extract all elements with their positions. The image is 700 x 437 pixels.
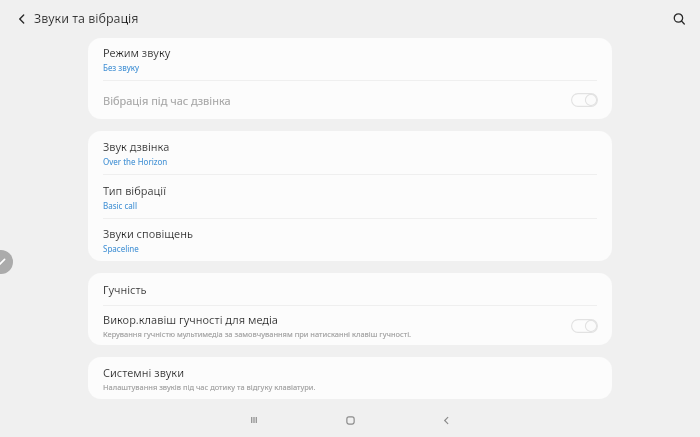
staticText: Over the Horizon xyxy=(103,156,168,167)
button[interactable]: Системні звуки xyxy=(88,357,612,399)
staticText: Налаштування звуків під час дотику та ві… xyxy=(103,382,316,392)
button[interactable]: Toggle xyxy=(571,319,598,333)
button[interactable]: Тип вібрації xyxy=(88,175,612,218)
button[interactable]: Режим звуку xyxy=(88,38,612,80)
staticText: Звук дзвінка xyxy=(103,139,170,154)
button[interactable]: Викор.клавіш гучності для медіа xyxy=(88,306,612,345)
button[interactable]: Back xyxy=(428,403,464,437)
staticText: Режим звуку xyxy=(103,45,171,60)
button[interactable]: Вібрація під час дзвінка xyxy=(88,81,612,119)
button[interactable]: Recent apps xyxy=(236,403,272,437)
button[interactable]: Back xyxy=(7,4,37,34)
button[interactable]: Гучність xyxy=(88,273,612,305)
button[interactable]: Звук дзвінка xyxy=(88,131,612,174)
button[interactable]: Звуки сповіщень xyxy=(88,219,612,261)
staticText: Викор.клавіш гучності для медіа xyxy=(103,312,278,327)
staticText: Без звуку xyxy=(103,62,140,73)
staticText: Звуки та вібрація xyxy=(34,10,139,27)
staticText: Spaceline xyxy=(103,243,139,254)
button[interactable]: Search xyxy=(664,4,694,34)
button[interactable]: Toggle xyxy=(571,93,598,107)
staticText: Basic call xyxy=(103,200,137,211)
staticText: Керування гучністю мультимедіа за замовч… xyxy=(103,329,412,339)
staticText: Вібрація під час дзвінка xyxy=(103,93,231,108)
staticText: Тип вібрації xyxy=(103,183,166,198)
button[interactable]: Home xyxy=(332,403,368,437)
staticText: Звуки сповіщень xyxy=(103,226,193,241)
staticText: Гучність xyxy=(103,282,147,297)
button[interactable]: Edit xyxy=(0,250,13,274)
staticText: Системні звуки xyxy=(103,365,184,380)
